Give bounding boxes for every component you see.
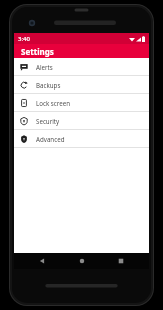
staticText: Lock screen	[36, 99, 71, 107]
staticText: Settings	[21, 46, 54, 57]
staticText: Backups	[36, 81, 61, 89]
button[interactable]: Backups	[14, 76, 149, 93]
button[interactable]: Home	[71, 253, 93, 269]
button[interactable]: Lock screen	[14, 94, 149, 111]
button[interactable]: Recent apps	[110, 253, 132, 269]
button[interactable]: Back	[31, 253, 53, 269]
staticText: Security	[36, 117, 60, 125]
button[interactable]: Advanced	[14, 130, 149, 147]
button[interactable]: Alerts	[14, 58, 149, 75]
button[interactable]: Security	[14, 112, 149, 129]
staticText: Alerts	[36, 63, 53, 71]
staticText: 3:40	[18, 35, 30, 43]
staticText: Advanced	[36, 135, 65, 143]
